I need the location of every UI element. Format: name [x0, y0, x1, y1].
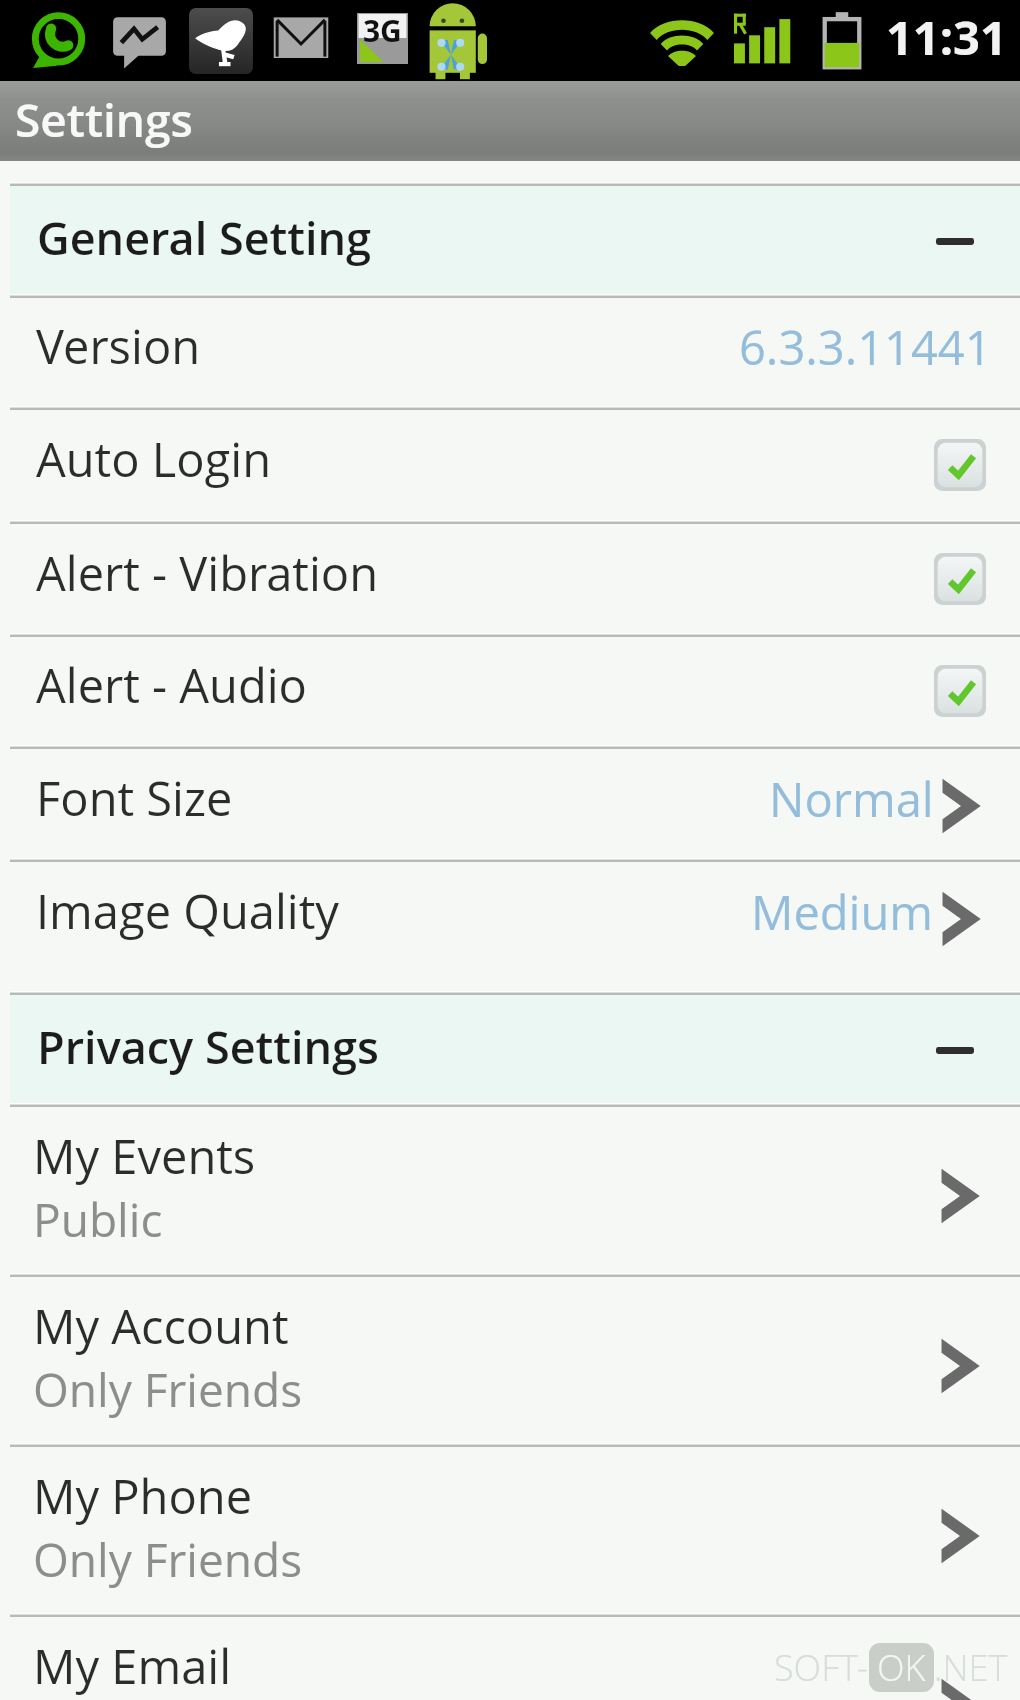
- staticText: .NET: [934, 1643, 1008, 1692]
- staticText: Font Size: [36, 766, 233, 830]
- button[interactable]: Version: [0, 298, 1020, 406]
- button[interactable]: Alert - Vibration: [0, 524, 1020, 633]
- staticText: My Events: [33, 1124, 256, 1188]
- button[interactable]: My Email: [0, 1617, 1020, 1700]
- button[interactable]: Alert - Audio: [0, 637, 1020, 745]
- staticText: 11:31: [886, 5, 1007, 69]
- button[interactable]: Image Quality: [0, 862, 1020, 991]
- button[interactable]: Font Size: [0, 749, 1020, 858]
- other: Android: [423, 0, 489, 80]
- other: Collapse section: [936, 238, 974, 245]
- staticText: OK: [877, 1643, 926, 1692]
- button[interactable]: General Setting: [10, 186, 1020, 294]
- staticText: Settings: [15, 88, 193, 151]
- staticText: Image Quality: [36, 879, 339, 943]
- staticText: My Email: [33, 1634, 232, 1698]
- button[interactable]: Auto Login: [0, 410, 1020, 520]
- staticText: Public: [33, 1188, 163, 1251]
- button[interactable]: My Account: [0, 1277, 1020, 1443]
- staticText: SOFT-: [774, 1643, 869, 1692]
- staticText: Alert - Audio: [36, 653, 307, 717]
- staticText: Version: [36, 314, 201, 378]
- button[interactable]: My Phone: [0, 1447, 1020, 1613]
- other: Signal strength: [734, 11, 790, 65]
- other: Enabled: [934, 665, 986, 717]
- other: Gmail: [270, 2, 332, 72]
- button[interactable]: My Events: [0, 1107, 1020, 1273]
- staticText: Only Friends: [33, 1528, 303, 1591]
- staticText: 3G: [363, 10, 402, 51]
- staticText: My Phone: [33, 1464, 253, 1528]
- other: 3G data: [357, 13, 408, 64]
- staticText: Privacy Settings: [37, 1016, 380, 1077]
- button[interactable]: Privacy Settings: [10, 995, 1020, 1103]
- other: WhatsApp: [32, 16, 83, 69]
- staticText: Normal: [769, 767, 934, 831]
- staticText: Medium: [751, 880, 934, 944]
- other: Messenger: [112, 14, 167, 69]
- other: Wi-Fi: [650, 14, 714, 66]
- staticText: 6.3.3.11441: [739, 315, 992, 379]
- other: Battery: [818, 11, 866, 69]
- staticText: General Setting: [37, 207, 372, 268]
- other: Enabled: [934, 439, 986, 491]
- staticText: Only Friends: [33, 1358, 303, 1421]
- staticText: Auto Login: [36, 427, 272, 491]
- staticText: My Account: [33, 1294, 289, 1358]
- other: Collapse section: [936, 1047, 974, 1054]
- other: Twitter: [187, 6, 255, 76]
- staticText: Alert - Vibration: [36, 541, 379, 605]
- other: Enabled: [934, 553, 986, 605]
